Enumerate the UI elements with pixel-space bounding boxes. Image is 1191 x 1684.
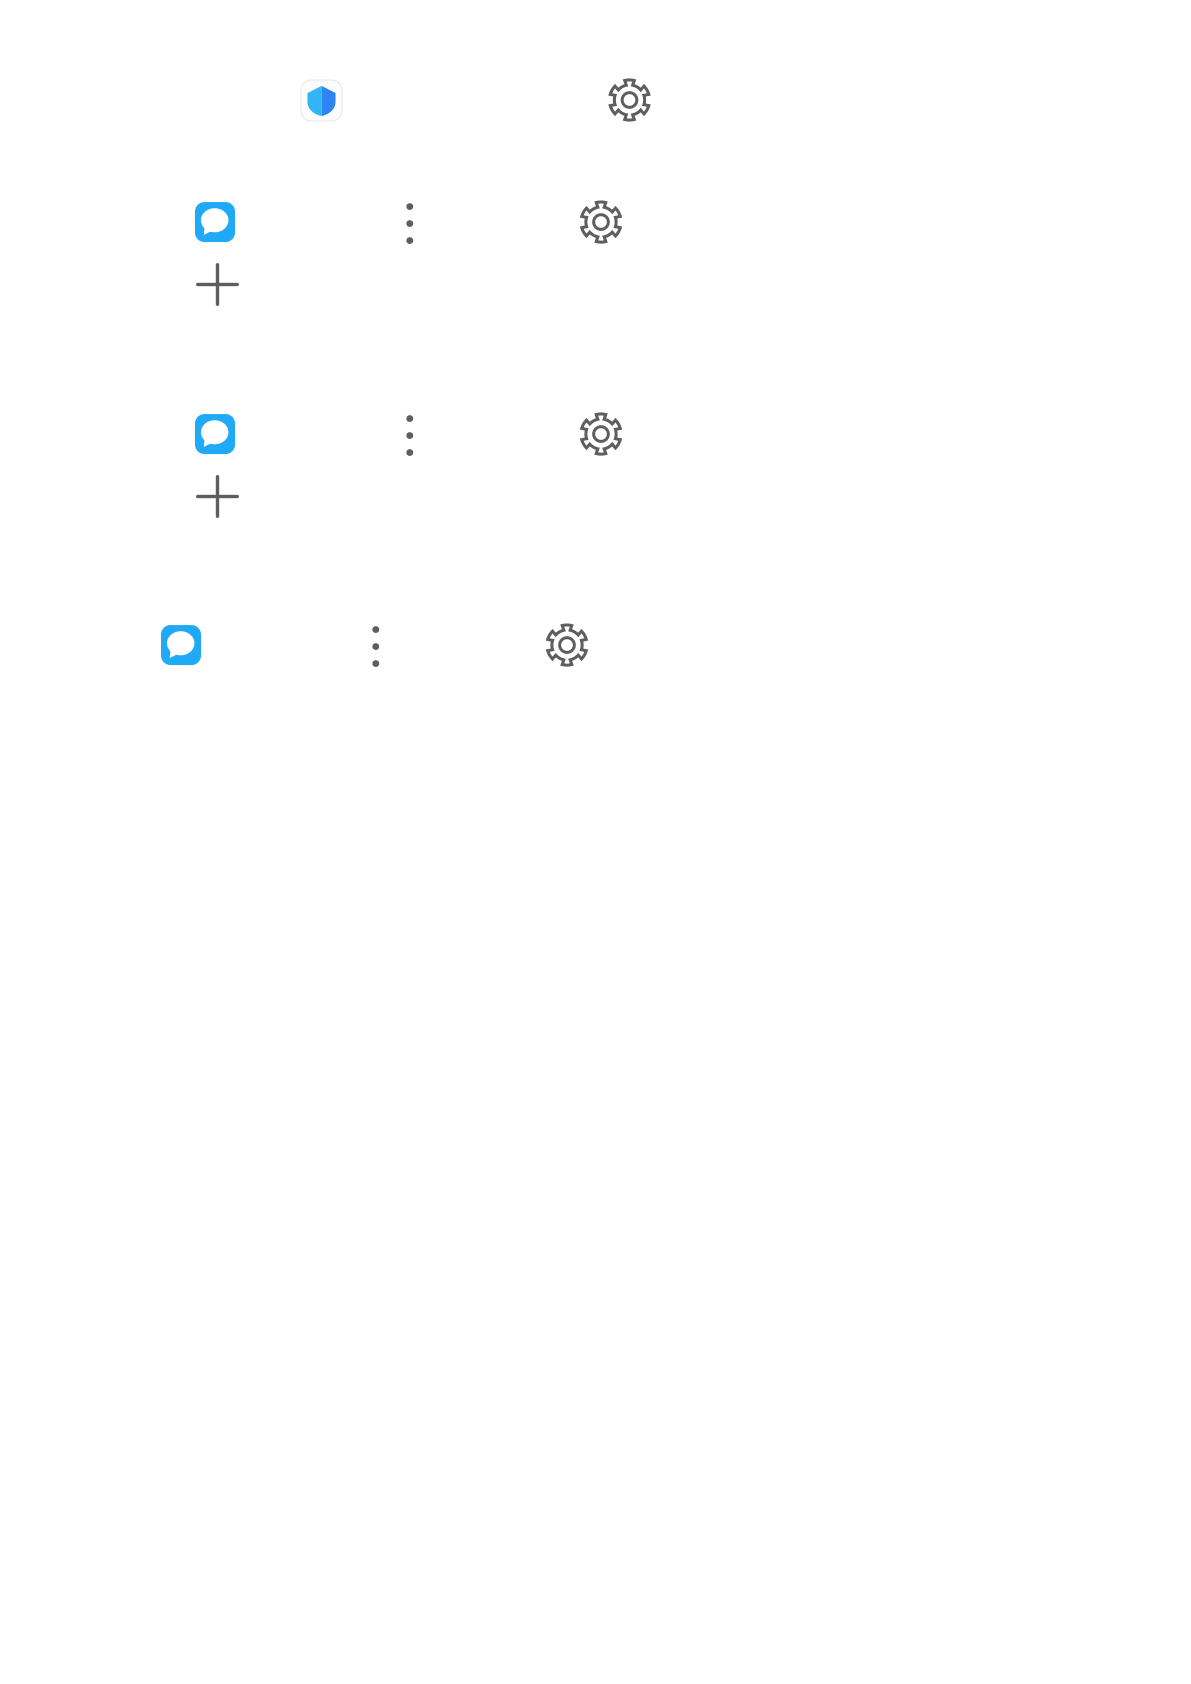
button[interactable]: Add <box>196 475 239 518</box>
button[interactable]: More options <box>406 415 413 456</box>
button[interactable]: Notification settings <box>546 624 588 666</box>
button[interactable]: More options <box>406 203 413 244</box>
button[interactable]: Settings <box>608 79 650 121</box>
button[interactable]: Messages <box>195 414 235 454</box>
button[interactable]: Messages <box>161 625 201 665</box>
button[interactable]: App protection <box>301 80 342 121</box>
button[interactable]: More options <box>372 626 379 667</box>
button[interactable]: Notification settings <box>580 201 622 243</box>
button[interactable]: Add <box>196 263 239 306</box>
button[interactable]: Messages <box>195 202 235 242</box>
button[interactable]: Notification settings <box>580 413 622 455</box>
